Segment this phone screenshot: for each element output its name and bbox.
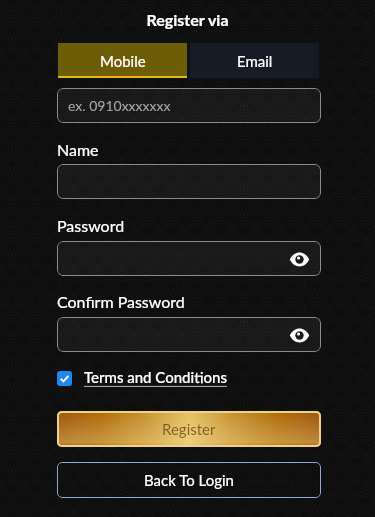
button[interactable]	[57, 164, 321, 199]
staticText: Email	[237, 52, 273, 70]
staticText: Register via	[0, 10, 375, 29]
button[interactable]: ex. 0910xxxxxxx	[57, 88, 321, 123]
button[interactable]: Mobile	[58, 43, 187, 78]
staticText: Terms and Conditions	[84, 368, 227, 386]
staticText: ex. 0910xxxxxxx	[68, 97, 171, 114]
staticText: Name	[57, 140, 99, 159]
button[interactable]: Toggle password visibility	[57, 241, 321, 276]
button[interactable]: Terms and Conditions	[57, 368, 321, 390]
staticText: Mobile	[100, 52, 146, 70]
button[interactable]: Register	[57, 411, 321, 447]
button[interactable]: Toggle password visibility	[57, 317, 321, 352]
staticText: Confirm Password	[57, 292, 185, 311]
button[interactable]: Toggle password visibility	[287, 323, 311, 347]
staticText: Register	[162, 420, 216, 438]
staticText: Back To Login	[144, 471, 234, 489]
button[interactable]: Back To Login	[57, 462, 321, 498]
staticText: Password	[57, 216, 125, 235]
button[interactable]: Toggle password visibility	[287, 247, 311, 271]
button[interactable]: Email	[190, 43, 319, 78]
